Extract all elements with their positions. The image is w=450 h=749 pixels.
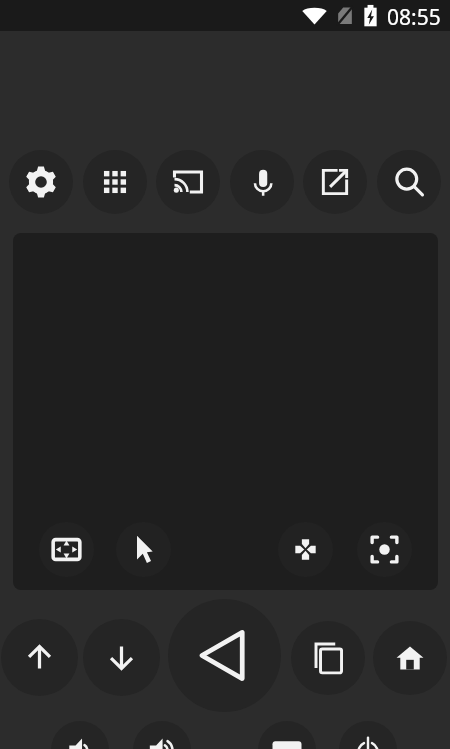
button[interactable]: Keyboard bbox=[258, 721, 316, 749]
button[interactable]: Recent apps bbox=[291, 621, 365, 695]
button[interactable]: Volume up bbox=[133, 721, 191, 749]
button[interactable]: Settings bbox=[9, 150, 73, 214]
button[interactable]: Power bbox=[339, 721, 397, 749]
button[interactable]: Cursor mode bbox=[116, 522, 171, 577]
button[interactable]: Mute bbox=[51, 721, 109, 749]
button[interactable]: Open app bbox=[303, 150, 367, 214]
button[interactable]: Home bbox=[373, 621, 447, 695]
button[interactable]: Voice search bbox=[230, 150, 294, 214]
button[interactable]: Back bbox=[168, 599, 281, 712]
button[interactable]: Scroll up bbox=[1, 619, 78, 696]
button[interactable]: Directional pad bbox=[278, 522, 333, 577]
button[interactable]: D-pad layout bbox=[39, 522, 94, 577]
button[interactable]: Search bbox=[377, 150, 441, 214]
staticText: 08:55 bbox=[387, 3, 441, 32]
button[interactable]: Select bbox=[357, 522, 412, 577]
button[interactable]: Apps bbox=[83, 150, 147, 214]
button[interactable]: Touchpad bbox=[13, 233, 438, 590]
button[interactable]: Cast screen bbox=[156, 150, 220, 214]
button[interactable]: Scroll down bbox=[83, 619, 160, 696]
